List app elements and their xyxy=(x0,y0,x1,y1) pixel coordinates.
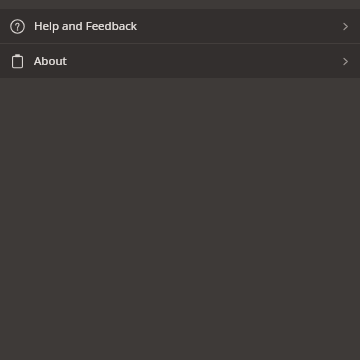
button[interactable]: About xyxy=(0,44,360,78)
staticText: About xyxy=(34,53,67,69)
other: Open xyxy=(340,56,351,67)
other: Open xyxy=(340,21,351,32)
staticText: Help and Feedback xyxy=(34,18,137,34)
button[interactable]: Help and Feedback xyxy=(0,9,360,43)
